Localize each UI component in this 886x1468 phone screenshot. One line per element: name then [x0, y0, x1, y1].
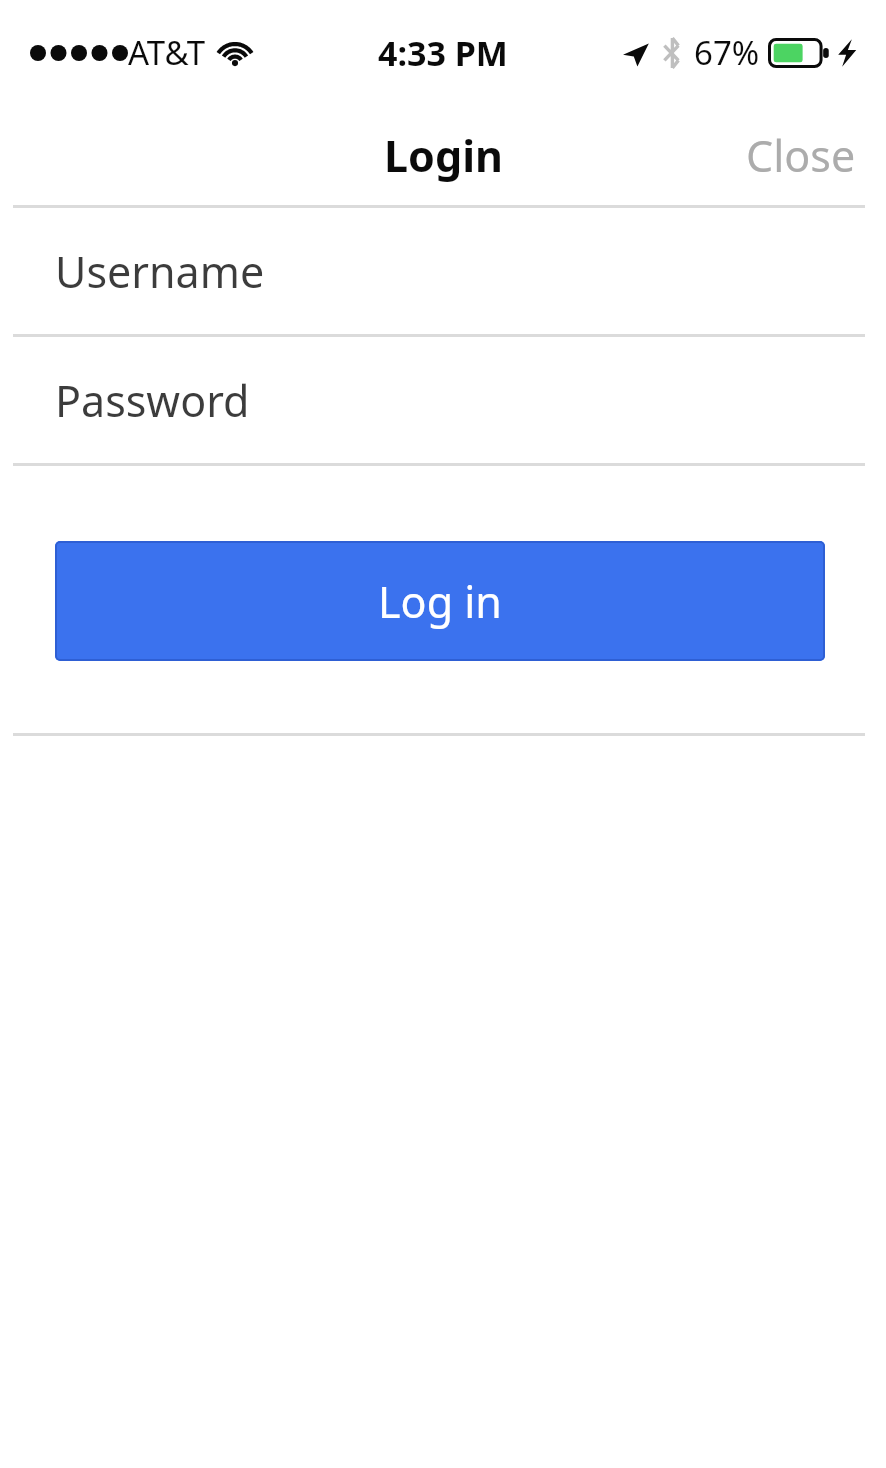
staticText: Log in [378, 572, 502, 631]
staticText: 67% [694, 30, 760, 75]
button[interactable]: Username [0, 208, 886, 334]
staticText: Login [384, 126, 503, 185]
staticText: Close [746, 126, 856, 185]
button[interactable]: Password [0, 337, 886, 463]
staticText: 4:33 PM [378, 30, 508, 76]
button[interactable]: Close [716, 108, 886, 203]
button[interactable]: Log in [55, 541, 825, 661]
staticText: Password [55, 371, 250, 430]
staticText: AT&T [128, 30, 205, 75]
staticText: Username [55, 242, 265, 301]
